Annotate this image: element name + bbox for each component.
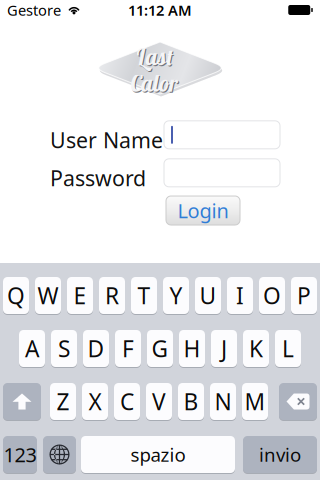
staticText: N xyxy=(214,386,231,416)
staticText: Q xyxy=(7,280,25,310)
button[interactable]: Login xyxy=(166,196,240,225)
staticText: spazio xyxy=(130,442,185,467)
staticText: A xyxy=(25,333,39,363)
staticText: Password xyxy=(50,164,146,192)
staticText: C xyxy=(120,386,134,416)
staticText: L xyxy=(282,333,294,363)
staticText: G xyxy=(151,333,168,363)
button[interactable]: X xyxy=(82,383,108,420)
staticText: Calor xyxy=(130,69,178,97)
staticText: P xyxy=(297,280,311,310)
button[interactable]: E xyxy=(67,277,93,314)
button[interactable] xyxy=(164,159,280,187)
staticText: 11:12 AM xyxy=(128,0,192,20)
staticText: W xyxy=(37,280,58,310)
staticText: invio xyxy=(259,442,301,467)
button[interactable]: Q xyxy=(3,277,29,314)
staticText: I xyxy=(236,280,244,310)
staticText: U xyxy=(199,280,216,310)
button[interactable]: H xyxy=(179,330,205,367)
button[interactable]: V xyxy=(146,383,172,420)
button[interactable]: spazio xyxy=(81,436,235,473)
staticText: Last xyxy=(135,43,172,71)
button[interactable]: L xyxy=(275,330,301,367)
staticText: R xyxy=(105,280,119,310)
staticText: S xyxy=(58,333,70,363)
staticText: 123 xyxy=(3,441,36,468)
button[interactable]: U xyxy=(195,277,221,314)
staticText: Z xyxy=(56,386,69,416)
button[interactable]: W xyxy=(35,277,61,314)
button[interactable]: D xyxy=(83,330,109,367)
button[interactable]: Delete xyxy=(279,383,317,420)
button[interactable]: invio xyxy=(243,436,317,473)
button[interactable]: B xyxy=(178,383,204,420)
staticText: M xyxy=(244,386,265,416)
staticText: Login xyxy=(177,197,228,224)
button[interactable]: Z xyxy=(50,383,76,420)
button[interactable] xyxy=(164,121,280,149)
staticText: Last xyxy=(136,44,173,72)
button[interactable]: R xyxy=(99,277,125,314)
button[interactable]: A xyxy=(19,330,45,367)
staticText: D xyxy=(87,333,104,363)
button[interactable]: Shift xyxy=(3,383,41,420)
staticText: Y xyxy=(169,280,182,310)
button[interactable]: P xyxy=(291,277,317,314)
staticText: J xyxy=(221,333,227,363)
staticText: K xyxy=(249,333,263,363)
button[interactable]: S xyxy=(51,330,77,367)
staticText: T xyxy=(137,280,150,310)
button[interactable]: K xyxy=(243,330,269,367)
staticText: Gestore xyxy=(7,0,61,20)
staticText: H xyxy=(183,333,200,363)
button[interactable]: O xyxy=(259,277,285,314)
button[interactable]: Y xyxy=(163,277,189,314)
staticText: Calor xyxy=(131,70,179,98)
staticText: O xyxy=(263,280,281,310)
button[interactable]: Next keyboard xyxy=(43,436,76,473)
staticText: B xyxy=(183,386,198,416)
button[interactable]: C xyxy=(114,383,140,420)
button[interactable]: M xyxy=(242,383,268,420)
button[interactable]: F xyxy=(115,330,141,367)
button[interactable]: N xyxy=(210,383,236,420)
staticText: E xyxy=(73,280,86,310)
button[interactable]: I xyxy=(227,277,253,314)
button[interactable]: T xyxy=(131,277,157,314)
button[interactable]: 123 xyxy=(3,436,37,473)
staticText: X xyxy=(88,386,101,416)
button[interactable]: G xyxy=(147,330,173,367)
staticText: F xyxy=(122,333,134,363)
staticText: User Name xyxy=(50,126,163,154)
staticText: V xyxy=(152,386,166,416)
button[interactable]: J xyxy=(211,330,237,367)
